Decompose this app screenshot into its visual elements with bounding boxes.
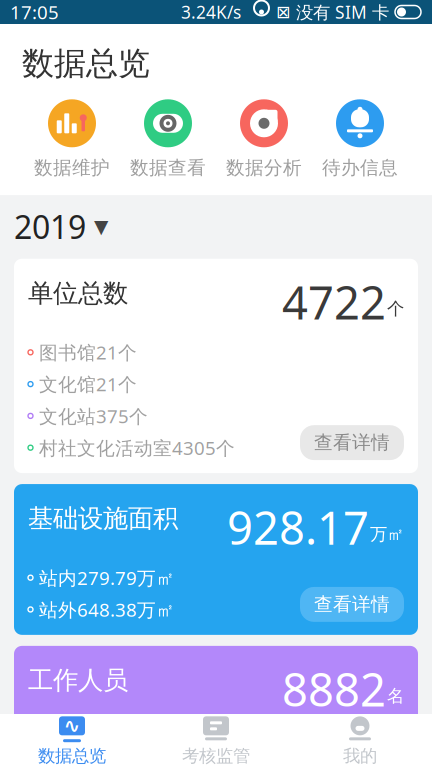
staticText: 站内279.79万㎡ xyxy=(39,565,175,590)
button[interactable]: 我的 xyxy=(288,714,432,768)
staticText: ▼ xyxy=(94,216,108,237)
staticText: 万㎡ xyxy=(370,523,404,545)
staticText: 查看详情 xyxy=(314,593,390,616)
button[interactable]: 查看详情 xyxy=(300,749,404,768)
staticText: 基础设施面积 xyxy=(28,503,178,534)
button[interactable]: 数据分析 xyxy=(216,99,312,179)
staticText: 3.24K/s xyxy=(181,0,241,23)
button[interactable]: 数据维护 xyxy=(24,99,120,179)
button[interactable]: 待办信息 xyxy=(312,99,408,179)
staticText: 个 xyxy=(387,298,404,319)
staticText xyxy=(241,0,253,27)
staticText: 数据分析 xyxy=(226,156,302,179)
staticText: 单位总数 xyxy=(28,278,128,309)
staticText: ∿ xyxy=(63,714,80,737)
staticText xyxy=(270,0,276,27)
button[interactable]: 数据查看 xyxy=(120,99,216,179)
button[interactable]: ∿ xyxy=(0,714,144,768)
staticText: 名 xyxy=(387,685,404,707)
staticText: 17:05 xyxy=(10,0,59,24)
staticText: 待办信息 xyxy=(322,156,398,179)
staticText: 工作人员 xyxy=(28,665,128,696)
staticText: ⊠ xyxy=(276,2,291,22)
staticText: 数据总览 xyxy=(22,44,150,83)
staticText: 2019 xyxy=(14,205,86,248)
staticText: 工作人员8500名 xyxy=(39,759,178,768)
staticText: 站外648.38万㎡ xyxy=(39,597,175,622)
staticText: 查看详情 xyxy=(314,755,390,768)
button[interactable]: 查看详情 xyxy=(300,425,404,460)
staticText: 文化馆21个 xyxy=(39,372,137,396)
staticText: 4722 xyxy=(282,272,386,332)
button[interactable]: 查看详情 xyxy=(300,587,404,622)
staticText: 数据维护 xyxy=(34,156,110,179)
staticText: 928.17 xyxy=(227,497,369,557)
button[interactable]: 考核监管 xyxy=(144,714,288,768)
staticText: 我的 xyxy=(343,745,377,767)
staticText: 文化站375个 xyxy=(39,403,148,428)
staticText: 图书馆21个 xyxy=(39,340,137,365)
staticText: 8882 xyxy=(282,659,386,719)
staticText: 考核监管 xyxy=(182,745,250,767)
staticText: 数据总览 xyxy=(38,745,106,767)
staticText: 村社文化活动室4305个 xyxy=(39,435,235,460)
button[interactable]: 2019 xyxy=(14,195,418,248)
staticText: 没有 SIM 卡 xyxy=(291,0,394,23)
staticText: 查看详情 xyxy=(314,431,390,454)
staticText: 数据查看 xyxy=(130,156,206,179)
staticText: 站长382名 xyxy=(39,727,129,752)
